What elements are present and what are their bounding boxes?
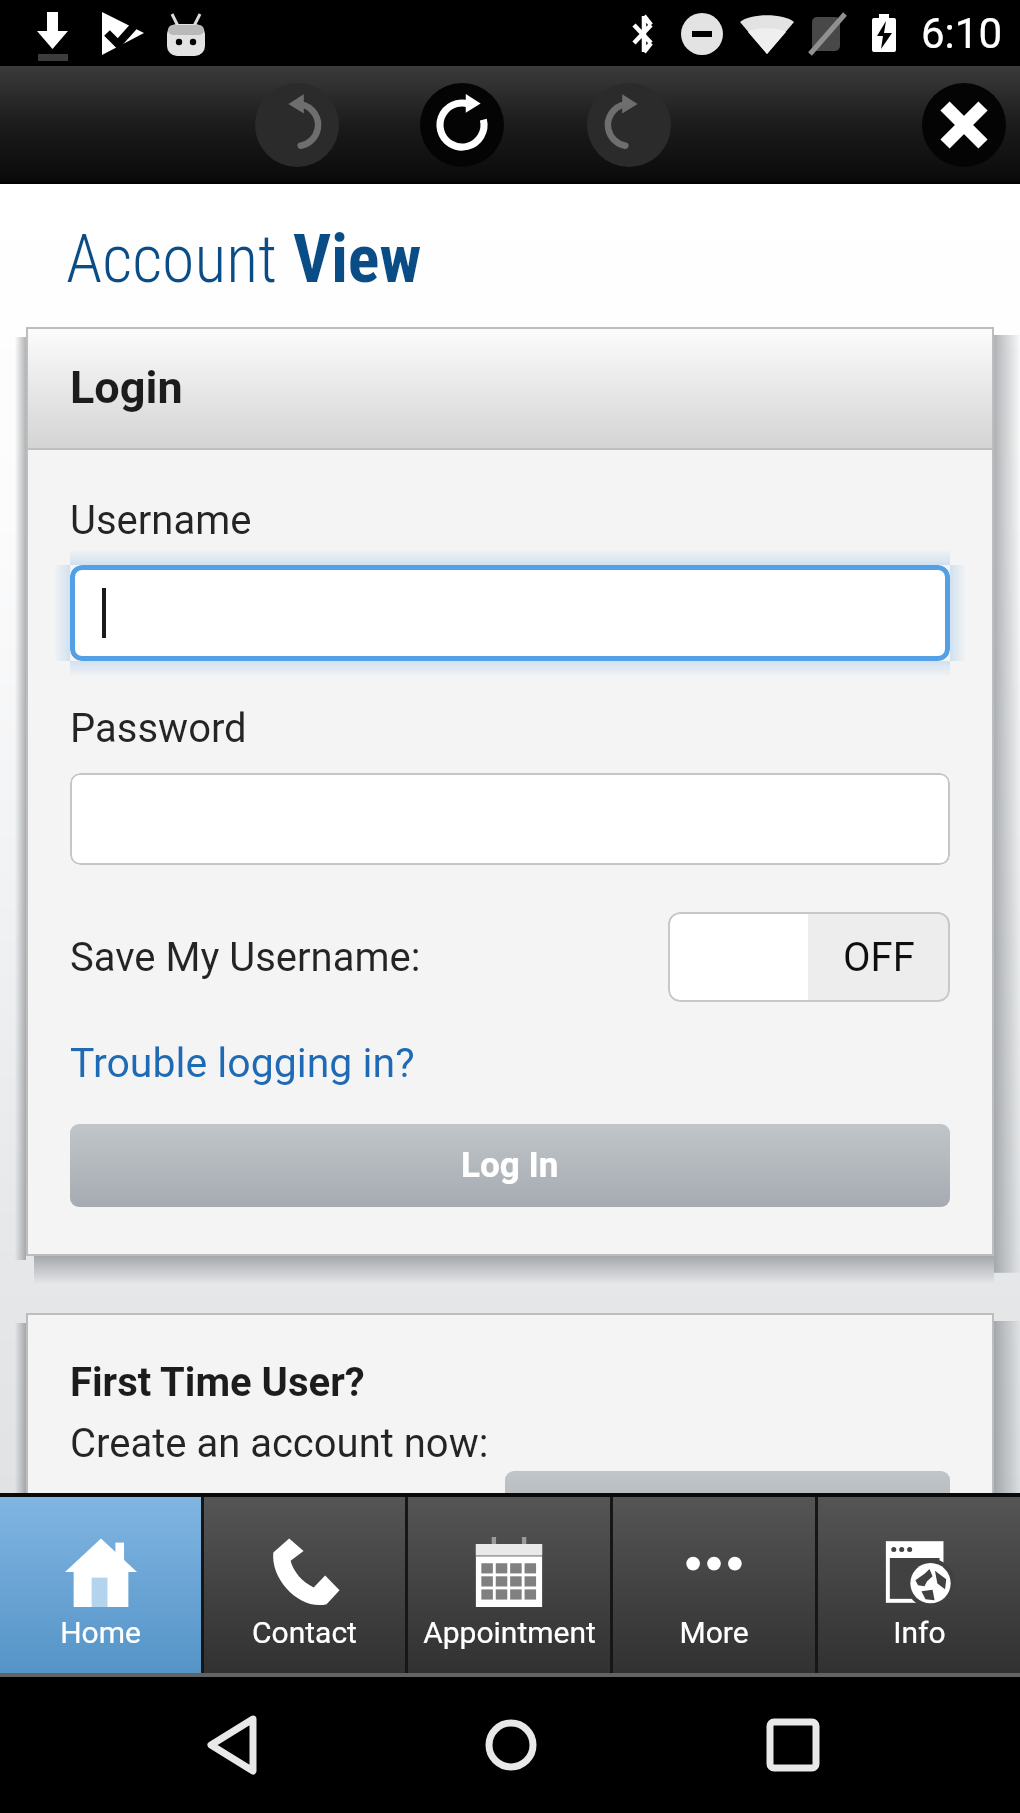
button[interactable]: Back bbox=[185, 1700, 275, 1790]
staticText: Create an account now: bbox=[70, 1420, 489, 1467]
staticText: 6:10 bbox=[921, 9, 1002, 58]
staticText: Home bbox=[60, 1615, 141, 1650]
button[interactable]: Recents bbox=[748, 1700, 838, 1790]
staticText: Save My Username: bbox=[70, 934, 421, 981]
button[interactable]: Home bbox=[466, 1700, 556, 1790]
button[interactable]: More bbox=[613, 1497, 815, 1673]
button[interactable]: Create account bbox=[505, 1471, 950, 1554]
staticText: Account bbox=[66, 221, 293, 298]
button[interactable]: Close bbox=[922, 83, 1006, 167]
button[interactable]: Save My Username toggle bbox=[668, 912, 950, 1002]
button[interactable]: Password field bbox=[70, 773, 950, 865]
button[interactable]: Appointment bbox=[408, 1497, 610, 1673]
button[interactable]: Username field bbox=[70, 565, 950, 661]
staticText: Login bbox=[70, 361, 183, 414]
staticText: Appointment bbox=[423, 1615, 596, 1650]
button[interactable]: Home bbox=[0, 1497, 201, 1673]
staticText: More bbox=[679, 1615, 749, 1650]
button[interactable]: Info bbox=[818, 1497, 1020, 1673]
button[interactable]: Forward bbox=[587, 83, 671, 167]
staticText: Trouble logging in? bbox=[70, 1039, 415, 1087]
staticText: OFF bbox=[843, 934, 915, 981]
staticText: Password bbox=[70, 705, 247, 752]
staticText: Contact bbox=[252, 1615, 357, 1650]
staticText: First Time User? bbox=[70, 1359, 365, 1406]
staticText: Info bbox=[893, 1615, 946, 1650]
button[interactable]: Contact bbox=[204, 1497, 405, 1673]
staticText: Log In bbox=[461, 1145, 559, 1186]
button[interactable]: Trouble logging in? bbox=[70, 1039, 415, 1087]
staticText: View bbox=[293, 221, 422, 298]
button[interactable]: Back bbox=[255, 83, 339, 167]
button[interactable]: Reload bbox=[420, 83, 504, 167]
staticText: Username bbox=[70, 497, 252, 544]
button[interactable]: Log In bbox=[70, 1124, 950, 1207]
